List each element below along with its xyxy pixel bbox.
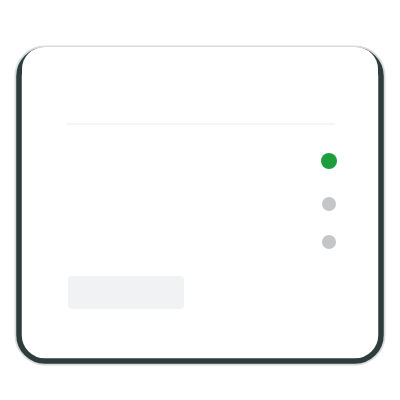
button[interactable]: Status inactive [322, 235, 336, 249]
button[interactable]: Status inactive [322, 197, 336, 211]
button[interactable]: Status active [321, 153, 337, 169]
